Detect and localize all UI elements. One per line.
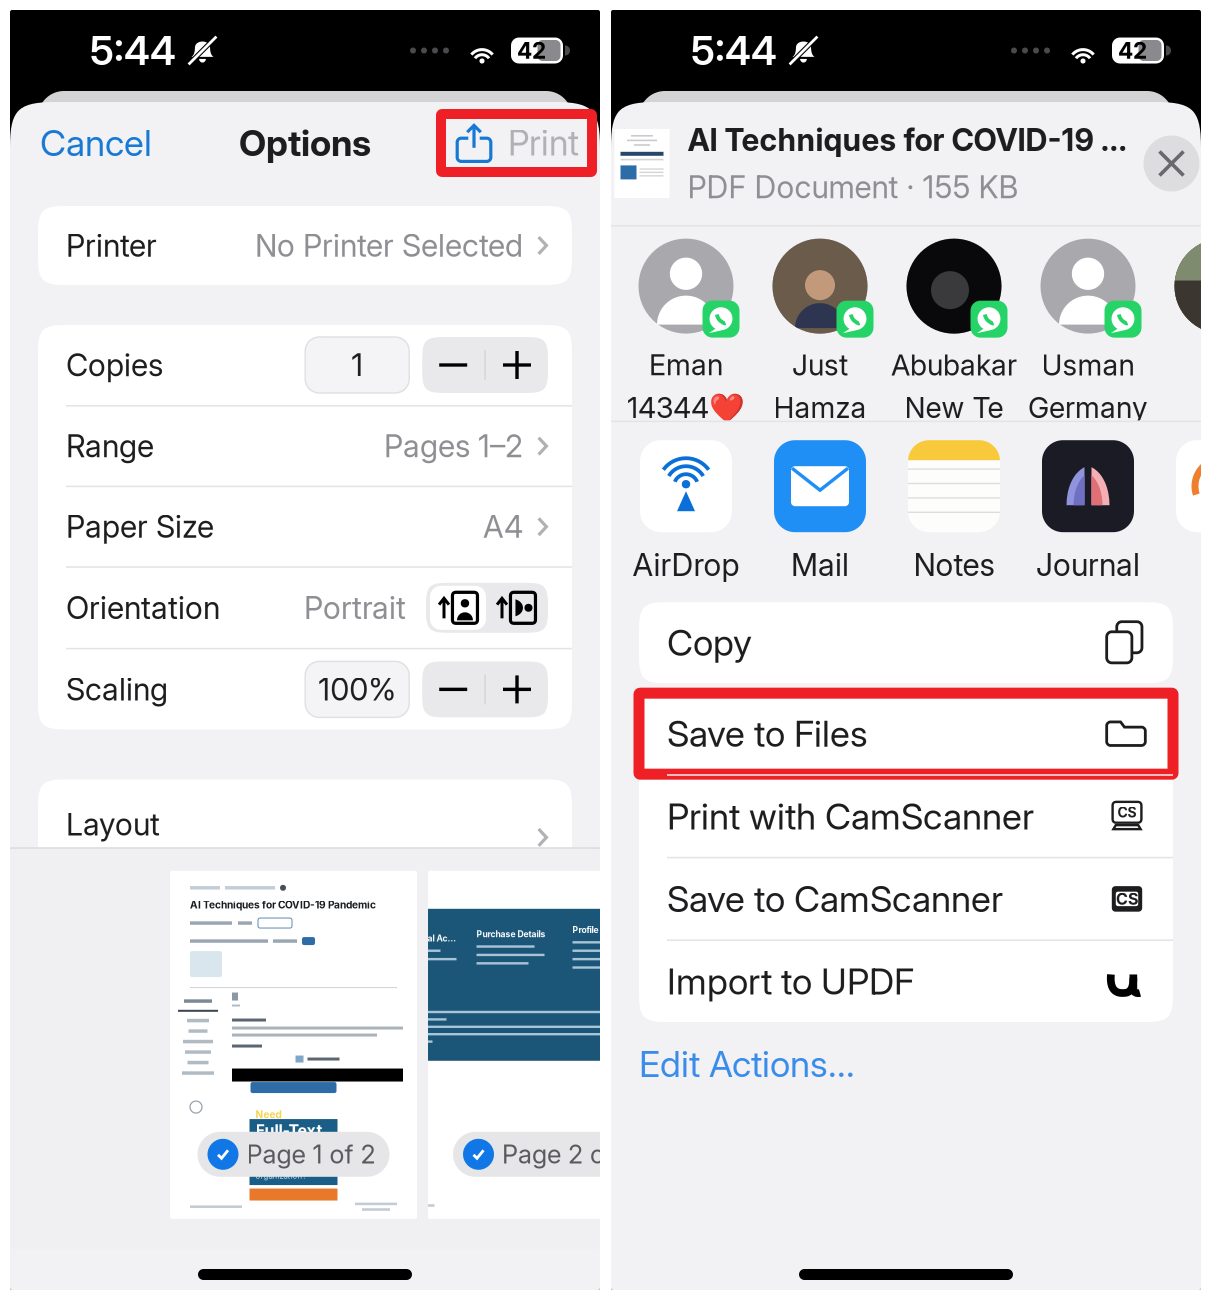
button[interactable]: Paper Size	[38, 487, 572, 566]
staticText: CS	[1117, 804, 1136, 821]
staticText: Copy	[667, 621, 752, 664]
staticText: IEEE Personal Account	[380, 933, 458, 943]
staticText: 1	[351, 346, 363, 383]
button[interactable]: Import to UPDF	[639, 941, 1173, 1022]
staticText: Pages 1–2	[384, 427, 523, 465]
staticText: Orientation	[66, 589, 220, 626]
staticText: Page 1 of 2	[246, 1139, 375, 1170]
button[interactable]: Portrait	[429, 586, 487, 630]
staticText: AI Techniques for COVID-19 Pandemic |...	[687, 121, 1127, 158]
staticText: A4	[483, 508, 523, 545]
button[interactable]: Close	[1143, 135, 1199, 191]
staticText: CS	[1116, 889, 1138, 909]
staticText: Scaling	[66, 671, 168, 708]
staticText: New Te	[904, 390, 1003, 425]
staticText: Just	[792, 348, 848, 382]
staticText: No Printer Selected	[255, 227, 523, 264]
staticText: Save to CamScanner	[667, 877, 1003, 921]
staticText: 42	[1118, 37, 1147, 64]
staticText: Germany	[1028, 390, 1148, 425]
button[interactable]: Edit Actions...	[611, 1022, 1201, 1106]
button[interactable]: 100%	[305, 661, 409, 717]
button[interactable]: Decrease	[422, 337, 484, 393]
staticText: Edit Actions...	[639, 1042, 855, 1086]
staticText: PDF Document · 155 KB	[687, 168, 1018, 206]
button[interactable]: Increase	[486, 661, 548, 717]
button[interactable]: Landscape	[487, 586, 545, 630]
staticText: Fre	[1200, 546, 1212, 583]
staticText: Usman	[1041, 348, 1134, 382]
button[interactable]: AirDrop	[619, 440, 753, 583]
staticText: Layout	[66, 806, 160, 843]
staticText: Full-Text	[255, 1121, 322, 1140]
button[interactable]: Mail	[753, 440, 887, 583]
staticText: Save to Files	[667, 712, 868, 755]
button[interactable]: Abubakar	[887, 237, 1021, 425]
staticText: Options	[239, 121, 371, 165]
button[interactable]: H	[1155, 237, 1212, 425]
staticText: Printer	[66, 227, 157, 264]
staticText: 42	[517, 37, 546, 64]
button[interactable]: Copy	[639, 602, 1173, 683]
button[interactable]: Journal	[1021, 440, 1155, 583]
staticText: 100%	[318, 671, 396, 708]
button[interactable]: Printer	[38, 206, 572, 285]
staticText: Print with CamScanner	[667, 794, 1034, 838]
button[interactable]: Print	[441, 114, 592, 172]
button[interactable]: Range	[38, 407, 572, 486]
button[interactable]: Save to Files	[639, 693, 1173, 774]
button[interactable]: Fre	[1155, 440, 1212, 583]
button[interactable]: Decrease	[422, 661, 484, 717]
staticText: AI Techniques for COVID-19 Pandemic	[190, 899, 376, 911]
staticText: Page 2 of 2	[502, 1139, 636, 1170]
staticText: Print	[508, 122, 579, 164]
staticText: Paper Size	[66, 508, 214, 545]
button[interactable]: 1	[305, 337, 409, 393]
staticText: Notes	[913, 546, 994, 583]
button[interactable]: Notes	[887, 440, 1021, 583]
staticText: Import to UPDF	[667, 960, 914, 1003]
button[interactable]: Cancel	[40, 111, 152, 175]
staticText: CS	[1116, 889, 1138, 909]
staticText: Eman	[649, 348, 723, 382]
button[interactable]: Save to CamScanner	[639, 858, 1173, 939]
staticText: Journal	[1036, 546, 1140, 583]
button[interactable]: Eman	[619, 237, 753, 425]
staticText: access to IEEE Xplore	[255, 1143, 308, 1162]
staticText: Need	[255, 1109, 281, 1121]
button[interactable]: Just	[753, 237, 887, 425]
button[interactable]: Print with CamScanner	[639, 776, 1173, 857]
staticText: Abubakar	[891, 348, 1017, 382]
staticText: Cancel	[40, 121, 152, 165]
staticText: Profile Information	[572, 925, 647, 935]
staticText: 5:44	[90, 26, 176, 75]
staticText: Portrait	[304, 589, 406, 626]
staticText: Copies	[66, 346, 163, 383]
staticText: Range	[66, 427, 154, 465]
staticText: for your organization?	[255, 1162, 306, 1180]
staticText: Mail	[791, 546, 849, 583]
staticText: Purchase Details	[476, 929, 545, 939]
staticText: Hamza	[773, 390, 866, 425]
button[interactable]: Increase	[486, 337, 548, 393]
staticText: 5:44	[691, 26, 777, 75]
staticText: 14344❤️	[627, 390, 745, 425]
staticText: AirDrop	[632, 546, 739, 583]
button[interactable]: Usman	[1021, 237, 1155, 425]
